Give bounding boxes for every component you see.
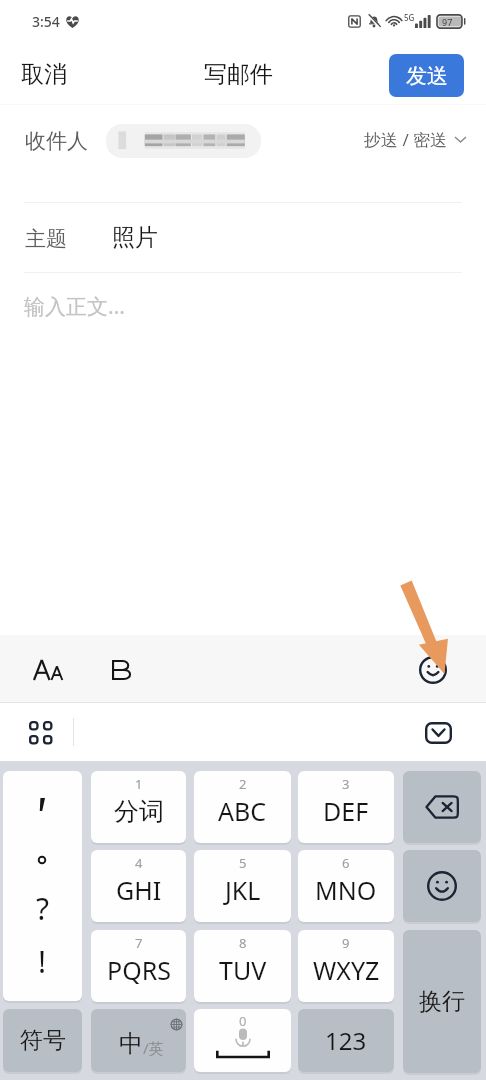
button[interactable]: 2 [194,771,291,843]
staticText: ? [36,888,50,929]
staticText: 抄送 / 密送 [364,128,448,151]
button[interactable]: 发送 [389,54,464,97]
staticText: 主题 [25,226,67,252]
staticText: JKL [225,873,261,907]
button[interactable]: 6 [298,850,394,922]
staticText: GHI [116,873,162,907]
button[interactable]: 4 [91,850,186,922]
staticText: WXYZ [313,953,380,987]
button[interactable]: 抄送 / 密送 [354,120,486,159]
staticText: 5 [239,854,247,872]
staticText: 符号 [20,1026,66,1055]
button[interactable]: 3 [298,771,394,843]
button[interactable]: Emoji [403,850,481,922]
staticText: 取消 [21,60,67,89]
staticText: 输入正文... [24,292,125,321]
button[interactable]: 123 [298,1009,394,1072]
staticText: 9 [342,934,350,952]
staticText: /英 [143,1038,164,1058]
button[interactable]: 5 [194,850,291,922]
staticText: 写邮件 [204,60,273,89]
button[interactable]: 1 [91,771,186,843]
staticText: PQRS [107,953,171,987]
staticText: 照片 [112,223,158,252]
staticText: 3:54 [32,12,60,31]
button[interactable]: 9 [298,930,394,1002]
button[interactable]: Insert emoji [406,643,460,697]
button[interactable]: 取消 [0,50,85,99]
staticText: 8 [239,934,247,952]
button[interactable]: Voice input / space [194,1009,291,1072]
staticText: 4 [135,854,143,872]
staticText: 换行 [419,987,465,1016]
staticText: DEF [323,794,369,828]
button[interactable]: Keyboard tools [17,709,65,757]
staticText: 123 [325,1024,367,1057]
staticText: 0 [239,1012,247,1030]
button[interactable]: Bold [94,642,148,696]
staticText: 2 [239,775,247,793]
staticText: 收件人 [25,128,88,154]
staticText: 3 [342,775,350,793]
staticText: TUV [219,953,267,987]
staticText: 5G [404,12,415,23]
staticText: 发送 [406,63,448,89]
button[interactable]: Chinese / English [91,1009,186,1072]
staticText: 中 [119,1029,143,1059]
staticText: ! [38,941,47,982]
staticText: 6 [342,854,350,872]
button[interactable]: 主题 [0,203,486,272]
button[interactable]: 输入正文... [0,273,486,333]
button[interactable]: Text size [22,642,76,696]
staticText: 分词 [114,796,164,827]
button[interactable]: Hide keyboard [414,709,462,757]
staticText: ABC [218,794,267,828]
button[interactable]: 7 [91,930,186,1002]
button[interactable]: 收件人 [0,105,486,172]
staticText: 97 [442,16,453,28]
staticText: MNO [315,873,377,907]
staticText: 7 [135,934,143,952]
button[interactable]: 符号 [3,1009,82,1072]
button[interactable]: Backspace [403,771,481,843]
staticText: 1 [135,775,143,793]
button[interactable]: 换行 [403,930,481,1073]
button[interactable]: Punctuation [3,771,82,1001]
button[interactable]: 8 [194,930,291,1002]
